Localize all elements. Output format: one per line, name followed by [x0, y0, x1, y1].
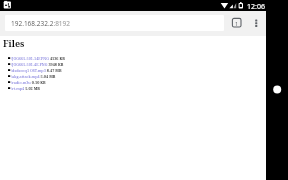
staticText: /JOG665-501-4E.PNG 3948 KB: [11, 62, 64, 67]
button[interactable]: /JOG665-501-14F.PNG 4136 KB: [0, 55, 266, 61]
button[interactable]: /JOG665-501-4E.PNG 3948 KB: [0, 61, 266, 67]
staticText: /akg-attack.mp4 5.04 MB: [11, 74, 56, 79]
staticText: 12:06: [247, 2, 265, 12]
staticText: /JOG665-501-14F.PNG 4136 KB: [11, 56, 65, 61]
staticText: /radio.m3u 0.10 KB: [11, 80, 46, 85]
staticText: /rt.mp4 5.02 MB: [11, 86, 40, 91]
staticText: 192.168.232.2:8192: [11, 19, 71, 28]
button[interactable]: More options: [249, 14, 264, 33]
staticText: 1: [235, 20, 239, 27]
button[interactable]: /dsdsooq1 OST.mp3 8.47 MB: [0, 67, 266, 73]
button[interactable]: Tabs: [226, 14, 247, 33]
button[interactable]: /akg-attack.mp4 5.04 MB: [0, 73, 266, 79]
staticText: /dsdsooq1 OST.mp3 8.47 MB: [11, 68, 62, 73]
button[interactable]: 192.168.232.2:8192: [5, 15, 224, 31]
button[interactable]: /radio.m3u 0.10 KB: [0, 79, 266, 85]
staticText: Files: [3, 37, 25, 49]
button[interactable]: /rt.mp4 5.02 MB: [0, 85, 266, 91]
